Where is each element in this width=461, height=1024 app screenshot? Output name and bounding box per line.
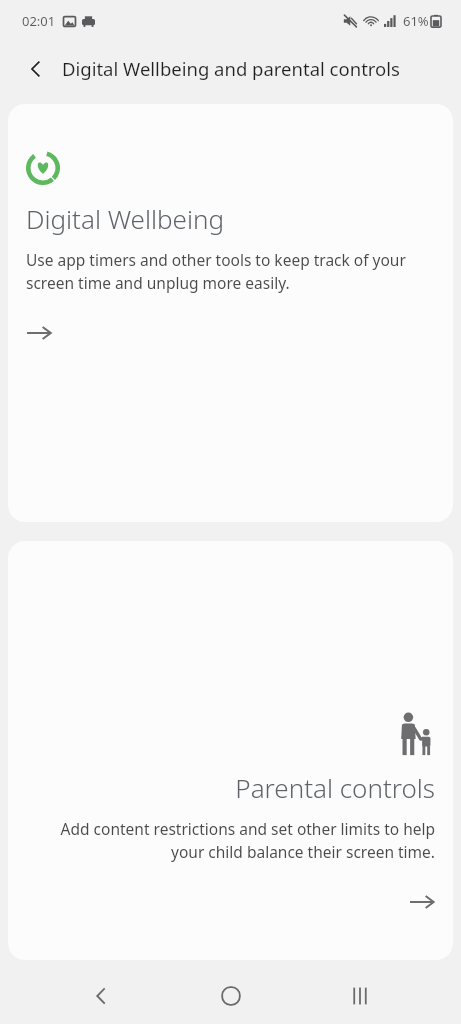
button[interactable]: Open parental controls [401, 885, 435, 919]
button[interactable]: Recent apps [332, 968, 388, 1024]
staticText: Add content restrictions and set other l… [26, 818, 435, 863]
staticText: Parental controls [235, 770, 435, 805]
staticText: 02:01 [22, 12, 56, 30]
staticText: Use app timers and other tools to keep t… [26, 249, 435, 294]
button[interactable]: Parental controls [8, 541, 453, 960]
staticText: Digital Wellbeing and parental controls [62, 56, 400, 81]
button[interactable]: Digital Wellbeing [8, 104, 453, 522]
staticText: 61% [403, 12, 429, 30]
button[interactable]: Home [203, 968, 259, 1024]
button[interactable]: Back [20, 53, 52, 85]
staticText: Digital Wellbeing [26, 201, 224, 236]
button[interactable]: Open Digital Wellbeing [26, 316, 60, 350]
button[interactable]: Back [73, 968, 129, 1024]
